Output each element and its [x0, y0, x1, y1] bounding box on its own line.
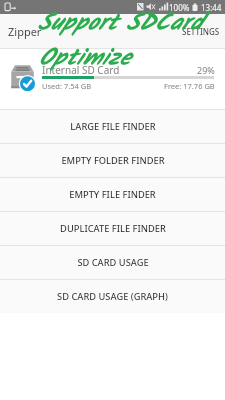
staticText: Optimize — [38, 40, 131, 77]
staticText: Zipper — [8, 24, 42, 39]
button[interactable]: SD CARD USAGE — [0, 246, 225, 279]
staticText: Used: 7.54 GB — [42, 81, 92, 91]
staticText: 100% — [169, 2, 190, 13]
staticText: Support SDCard — [37, 5, 202, 42]
button[interactable]: Zipper — [0, 18, 50, 45]
staticText: SD CARD USAGE (GRAPH) — [57, 290, 168, 303]
staticText: Free: 17.76 GB — [164, 81, 215, 91]
button[interactable]: EMPTY FOLDER FINDER — [0, 144, 225, 177]
staticText: EMPTY FOLDER FINDER — [61, 154, 165, 167]
button[interactable]: SD CARD USAGE (GRAPH) — [0, 280, 225, 313]
staticText: 29% — [197, 64, 215, 76]
button[interactable]: Internal SD Card — [0, 49, 225, 109]
staticText: DUPLICATE FILE FINDER — [60, 222, 166, 235]
staticText: 13:44 — [201, 2, 222, 13]
staticText: SD CARD USAGE — [77, 256, 149, 269]
staticText: EMPTY FILE FINDER — [69, 188, 156, 201]
staticText: LARGE FILE FINDER — [70, 120, 156, 133]
staticText: SETTINGS — [182, 26, 220, 37]
button[interactable]: DUPLICATE FILE FINDER — [0, 212, 225, 245]
staticText: Internal SD Card — [42, 63, 120, 77]
button[interactable]: EMPTY FILE FINDER — [0, 178, 225, 211]
button[interactable]: LARGE FILE FINDER — [0, 110, 225, 143]
button[interactable]: SETTINGS — [174, 20, 225, 43]
